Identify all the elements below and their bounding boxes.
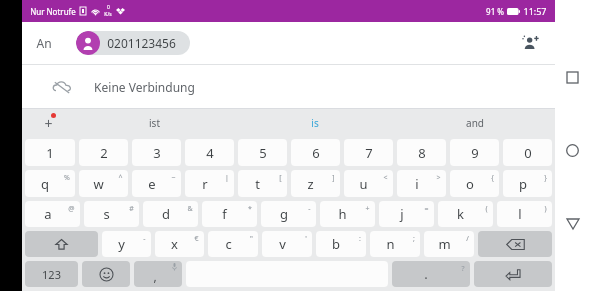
- button[interactable]: i: [397, 170, 446, 197]
- button[interactable]: l: [497, 201, 552, 227]
- staticText: Keine Verbindung: [94, 79, 195, 95]
- button[interactable]: f: [202, 201, 257, 227]
- staticText: @: [68, 204, 75, 214]
- staticText: ": [250, 234, 253, 244]
- staticText: p: [519, 175, 527, 193]
- button[interactable]: 7: [344, 139, 393, 166]
- staticText: 4: [206, 144, 214, 162]
- button[interactable]: 0201123456: [76, 31, 190, 55]
- staticText: 0201123456: [107, 35, 176, 51]
- staticText: ^: [118, 173, 123, 183]
- staticText: #: [129, 204, 134, 214]
- staticText: e: [148, 175, 156, 193]
- staticText: ;: [413, 234, 415, 244]
- button[interactable]: 0: [503, 139, 552, 166]
- staticText: }: [544, 173, 547, 183]
- staticText: {: [491, 173, 494, 183]
- staticText: -: [143, 234, 146, 244]
- staticText: K/s: [104, 11, 112, 18]
- staticText: =: [424, 204, 429, 214]
- button[interactable]: c: [208, 231, 258, 257]
- button[interactable]: Letzte Apps: [555, 60, 590, 95]
- button[interactable]: ist: [74, 109, 235, 137]
- staticText: [: [279, 173, 282, 183]
- button[interactable]: 123: [25, 261, 78, 287]
- button[interactable]: v: [262, 231, 312, 257]
- button[interactable]: w: [79, 170, 128, 197]
- staticText: l: [518, 205, 522, 223]
- staticText: is: [311, 116, 319, 130]
- button[interactable]: 1: [25, 139, 75, 166]
- button[interactable]: Keine Verbindung: [22, 65, 555, 108]
- button[interactable]: q: [25, 170, 75, 197]
- button[interactable]: del: [478, 231, 552, 257]
- button[interactable]: k: [438, 201, 493, 227]
- button[interactable]: d: [143, 201, 198, 227]
- button[interactable]: o: [450, 170, 499, 197]
- staticText: j: [400, 205, 404, 223]
- button[interactable]: 5: [238, 139, 287, 166]
- staticText: z: [307, 175, 314, 193]
- staticText: q: [41, 175, 49, 193]
- staticText: 6: [312, 144, 320, 162]
- staticText: c: [225, 235, 232, 253]
- staticText: ?: [461, 264, 465, 274]
- button[interactable]: u: [344, 170, 393, 197]
- button[interactable]: 4: [185, 139, 234, 166]
- staticText: %: [64, 173, 70, 183]
- button[interactable]: ,: [134, 261, 182, 287]
- staticText: u: [359, 175, 368, 193]
- button[interactable]: n: [370, 231, 420, 257]
- button[interactable]: s: [84, 201, 139, 227]
- staticText: x: [171, 235, 178, 253]
- staticText: ]: [332, 173, 335, 183]
- staticText: s: [103, 205, 110, 223]
- button[interactable]: y: [102, 231, 151, 257]
- button[interactable]: 8: [397, 139, 446, 166]
- button[interactable]: r: [185, 170, 234, 197]
- staticText: &: [187, 204, 193, 214]
- button[interactable]: p: [503, 170, 552, 197]
- staticText: 2: [100, 144, 108, 162]
- button[interactable]: enter: [474, 261, 552, 287]
- button[interactable]: Mehr: [22, 109, 74, 137]
- staticText: g: [280, 205, 288, 223]
- button[interactable]: 9: [450, 139, 499, 166]
- button[interactable]: g: [261, 201, 316, 227]
- staticText: 91 %: [486, 6, 504, 17]
- button[interactable]: z: [291, 170, 340, 197]
- button[interactable]: x: [155, 231, 204, 257]
- staticText: ~: [171, 173, 176, 183]
- staticText: d: [162, 205, 170, 223]
- button[interactable]: shift: [25, 231, 98, 257]
- staticText: f: [222, 205, 227, 223]
- staticText: 0: [524, 144, 532, 162]
- button[interactable]: Startseite: [555, 133, 590, 168]
- staticText: 1: [46, 144, 54, 162]
- staticText: *: [248, 204, 252, 214]
- staticText: v: [279, 235, 286, 253]
- button[interactable]: e: [132, 170, 181, 197]
- button[interactable]: emoji: [82, 261, 130, 287]
- button[interactable]: is: [235, 109, 395, 137]
- staticText: An: [36, 35, 52, 51]
- button[interactable]: Kontakt hinzufügen: [515, 28, 545, 58]
- staticText: o: [466, 175, 474, 193]
- button[interactable]: and: [395, 109, 555, 137]
- button[interactable]: .: [392, 261, 470, 287]
- button[interactable]: Zurück: [555, 206, 590, 241]
- button[interactable]: 3: [132, 139, 181, 166]
- button[interactable]: j: [379, 201, 434, 227]
- staticText: w: [93, 175, 104, 193]
- button[interactable]: 6: [291, 139, 340, 166]
- button[interactable]: h: [320, 201, 375, 227]
- button[interactable]: t: [238, 170, 287, 197]
- button[interactable]: b: [316, 231, 366, 257]
- button[interactable]: a: [25, 201, 80, 227]
- button[interactable]: 2: [79, 139, 128, 166]
- staticText: |: [225, 173, 229, 183]
- staticText: 3: [153, 144, 161, 162]
- staticText: €: [194, 234, 199, 244]
- button[interactable]: m: [424, 231, 474, 257]
